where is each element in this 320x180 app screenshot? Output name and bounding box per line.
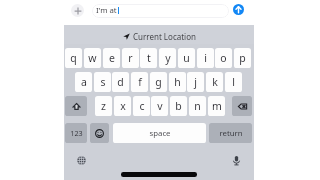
button[interactable]: Dictation [228,152,244,168]
staticText: h [174,75,181,89]
button[interactable]: Current Location [64,25,254,44]
button[interactable]: r [122,48,139,68]
staticText: m [212,99,222,113]
staticText: g [155,75,162,89]
staticText: space [149,128,171,139]
staticText: y [165,51,171,65]
button[interactable]: d [112,72,129,92]
button[interactable]: Send [233,4,244,15]
button[interactable]: p [234,48,251,68]
button[interactable]: y [159,48,176,68]
button[interactable]: Add attachment [71,4,84,17]
staticText: k [212,75,218,89]
staticText: f [138,75,142,89]
button[interactable]: w [84,48,101,68]
button[interactable]: f [131,72,148,92]
button[interactable]: x [114,96,131,116]
staticText: I'm at [96,5,117,16]
staticText: d [117,75,124,89]
staticText: s [100,75,106,89]
staticText: o [220,51,227,65]
button[interactable]: return [209,123,252,143]
staticText: a [81,75,87,89]
button[interactable]: a [75,72,92,92]
button[interactable]: Backspace [232,96,252,116]
button[interactable]: j [187,72,204,92]
button[interactable]: l [225,72,242,92]
staticText: l [232,75,235,89]
button[interactable]: 123 [65,123,87,143]
button[interactable]: h [169,72,186,92]
button[interactable]: Emoji [90,123,109,143]
staticText: r [128,51,133,65]
button[interactable]: k [206,72,223,92]
button[interactable]: v [151,96,168,116]
button[interactable]: e [103,48,120,68]
staticText: 123 [70,128,83,138]
staticText: p [239,51,246,65]
staticText: t [147,51,151,65]
staticText: j [194,75,197,89]
button[interactable]: I'm at [92,4,229,18]
button[interactable]: m [208,96,225,116]
button[interactable]: s [94,72,111,92]
button[interactable]: c [133,96,150,116]
staticText: c [139,99,145,113]
staticText: x [120,99,126,113]
button[interactable]: Switch keyboard [73,152,89,168]
button[interactable]: space [113,123,206,143]
button[interactable]: u [178,48,195,68]
button[interactable]: t [140,48,157,68]
button[interactable]: b [170,96,187,116]
button[interactable]: n [189,96,206,116]
staticText: u [183,51,190,65]
button[interactable]: Shift [65,96,87,116]
staticText: w [88,51,97,65]
staticText: i [204,51,207,65]
staticText: Current Location [133,31,196,42]
staticText: z [101,99,106,113]
staticText: b [175,99,182,113]
staticText: v [157,99,163,113]
staticText: n [194,99,201,113]
button[interactable]: z [95,96,112,116]
button[interactable]: g [150,72,167,92]
staticText: e [109,51,115,65]
staticText: return [219,128,243,139]
button[interactable]: i [197,48,214,68]
button[interactable]: o [215,48,232,68]
button[interactable]: q [65,48,82,68]
staticText: q [70,51,77,65]
